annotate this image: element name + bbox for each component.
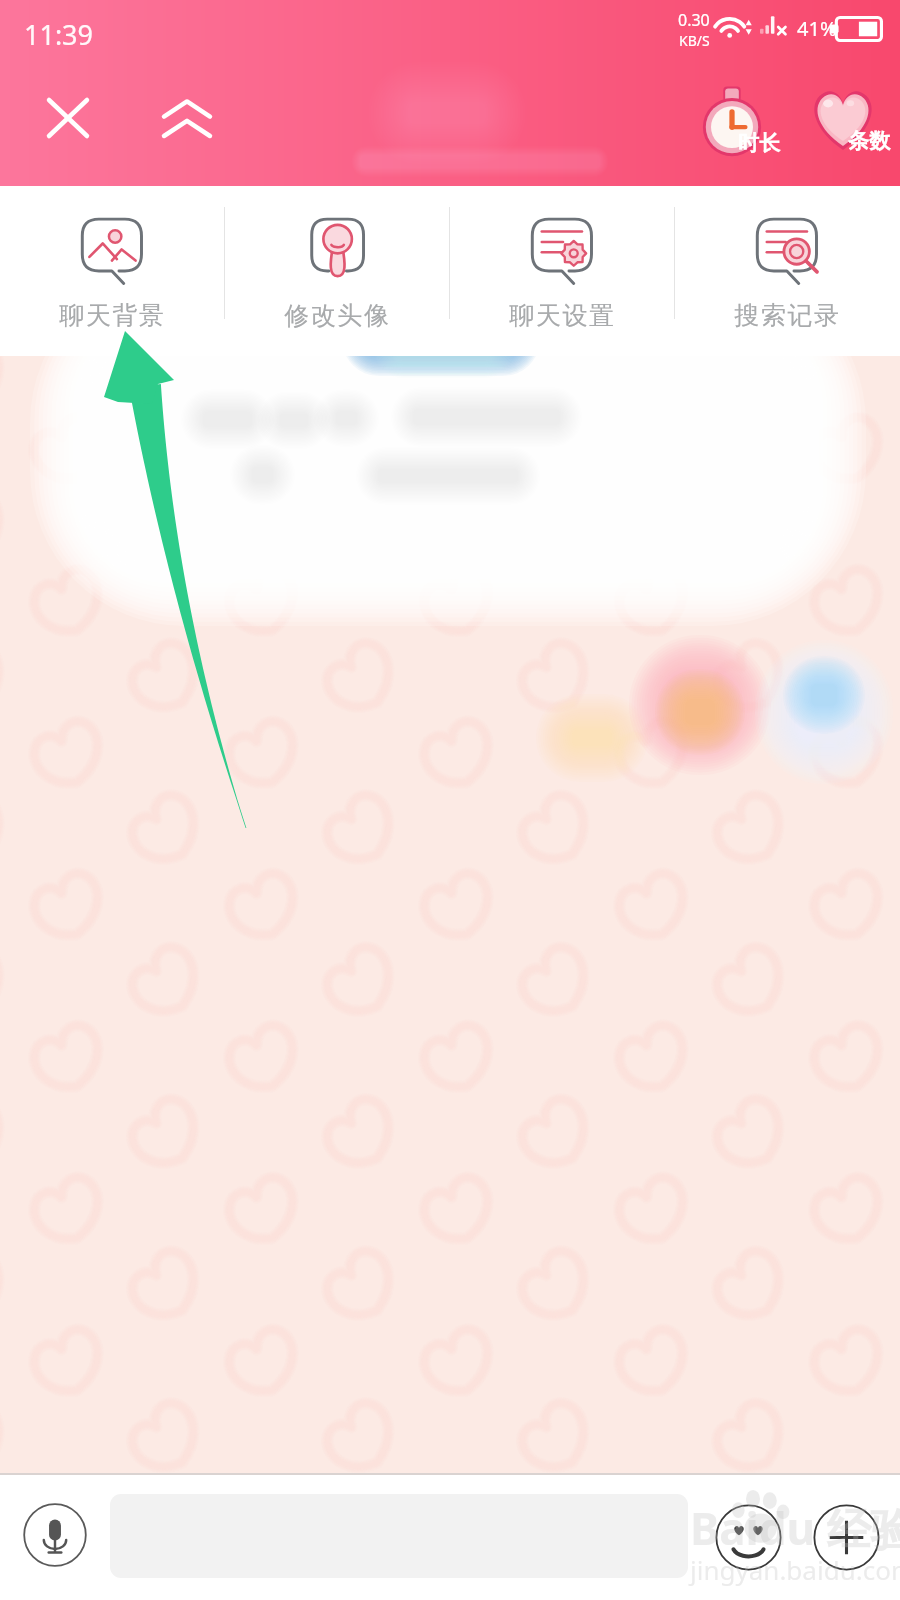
staticText: 条数 (848, 128, 890, 154)
staticText: KB/S (679, 31, 710, 50)
staticText: 时长 (738, 130, 780, 156)
staticText: jingyan.baidu.com (690, 1552, 900, 1587)
button[interactable]: More (810, 1501, 883, 1574)
staticText: Baidu 经验 (690, 1498, 900, 1558)
button[interactable]: 条数 (808, 86, 900, 162)
button[interactable]: 时长 (695, 86, 787, 162)
button[interactable]: Close (18, 68, 118, 168)
button[interactable]: 搜索记录 (675, 186, 900, 356)
staticText: 修改头像 (284, 300, 391, 331)
button[interactable]: Collapse (137, 68, 237, 168)
staticText: 0.30 (678, 9, 710, 31)
button[interactable]: Voice message (20, 1500, 90, 1570)
staticText: 搜索记录 (734, 300, 841, 331)
staticText: 聊天背景 (59, 300, 166, 331)
button[interactable]: Emoji (712, 1501, 785, 1574)
staticText: 11:39 (24, 16, 94, 53)
staticText: 41% (797, 15, 837, 42)
button[interactable]: 聊天背景 (0, 186, 225, 356)
button[interactable]: 修改头像 (225, 186, 450, 356)
staticText: 聊天设置 (509, 300, 616, 331)
button[interactable]: 聊天设置 (450, 186, 675, 356)
